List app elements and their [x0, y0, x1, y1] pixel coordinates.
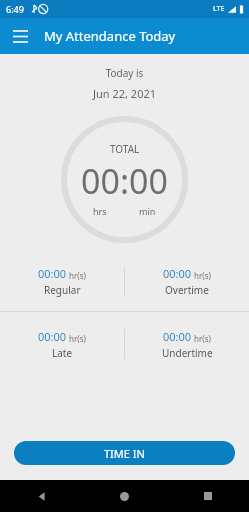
staticText: Regular: [44, 283, 81, 297]
staticText: hr(s): [194, 270, 211, 281]
staticText: TOTAL: [110, 142, 140, 156]
button[interactable]: 00:00: [125, 263, 249, 299]
staticText: Jun 22, 2021: [0, 86, 249, 101]
button[interactable]: Back: [0, 480, 83, 512]
staticText: hr(s): [69, 270, 86, 281]
staticText: 00:00: [38, 329, 67, 344]
button[interactable]: 00:00: [0, 326, 124, 362]
staticText: min: [139, 205, 156, 217]
button[interactable]: Home: [83, 480, 166, 512]
staticText: hr(s): [194, 333, 211, 344]
staticText: Overtime: [165, 283, 209, 297]
button[interactable]: 00:00: [125, 326, 249, 362]
staticText: Today is: [0, 66, 249, 80]
button[interactable]: 00:00: [0, 263, 124, 299]
staticText: Undertime: [162, 346, 213, 360]
staticText: 00:00: [81, 158, 168, 204]
staticText: 00:00: [163, 266, 192, 281]
staticText: TIME IN: [104, 446, 145, 461]
button[interactable]: TIME IN: [14, 441, 235, 465]
staticText: 00:00: [163, 329, 192, 344]
staticText: hrs: [93, 205, 107, 217]
staticText: LTE: [213, 4, 225, 14]
staticText: hr(s): [69, 333, 86, 344]
staticText: Late: [52, 346, 73, 360]
staticText: 6:49: [6, 3, 24, 15]
button[interactable]: Open navigation menu: [6, 22, 34, 50]
staticText: My Attendance Today: [44, 27, 176, 45]
button[interactable]: Recent apps: [166, 480, 249, 512]
staticText: 00:00: [38, 266, 67, 281]
